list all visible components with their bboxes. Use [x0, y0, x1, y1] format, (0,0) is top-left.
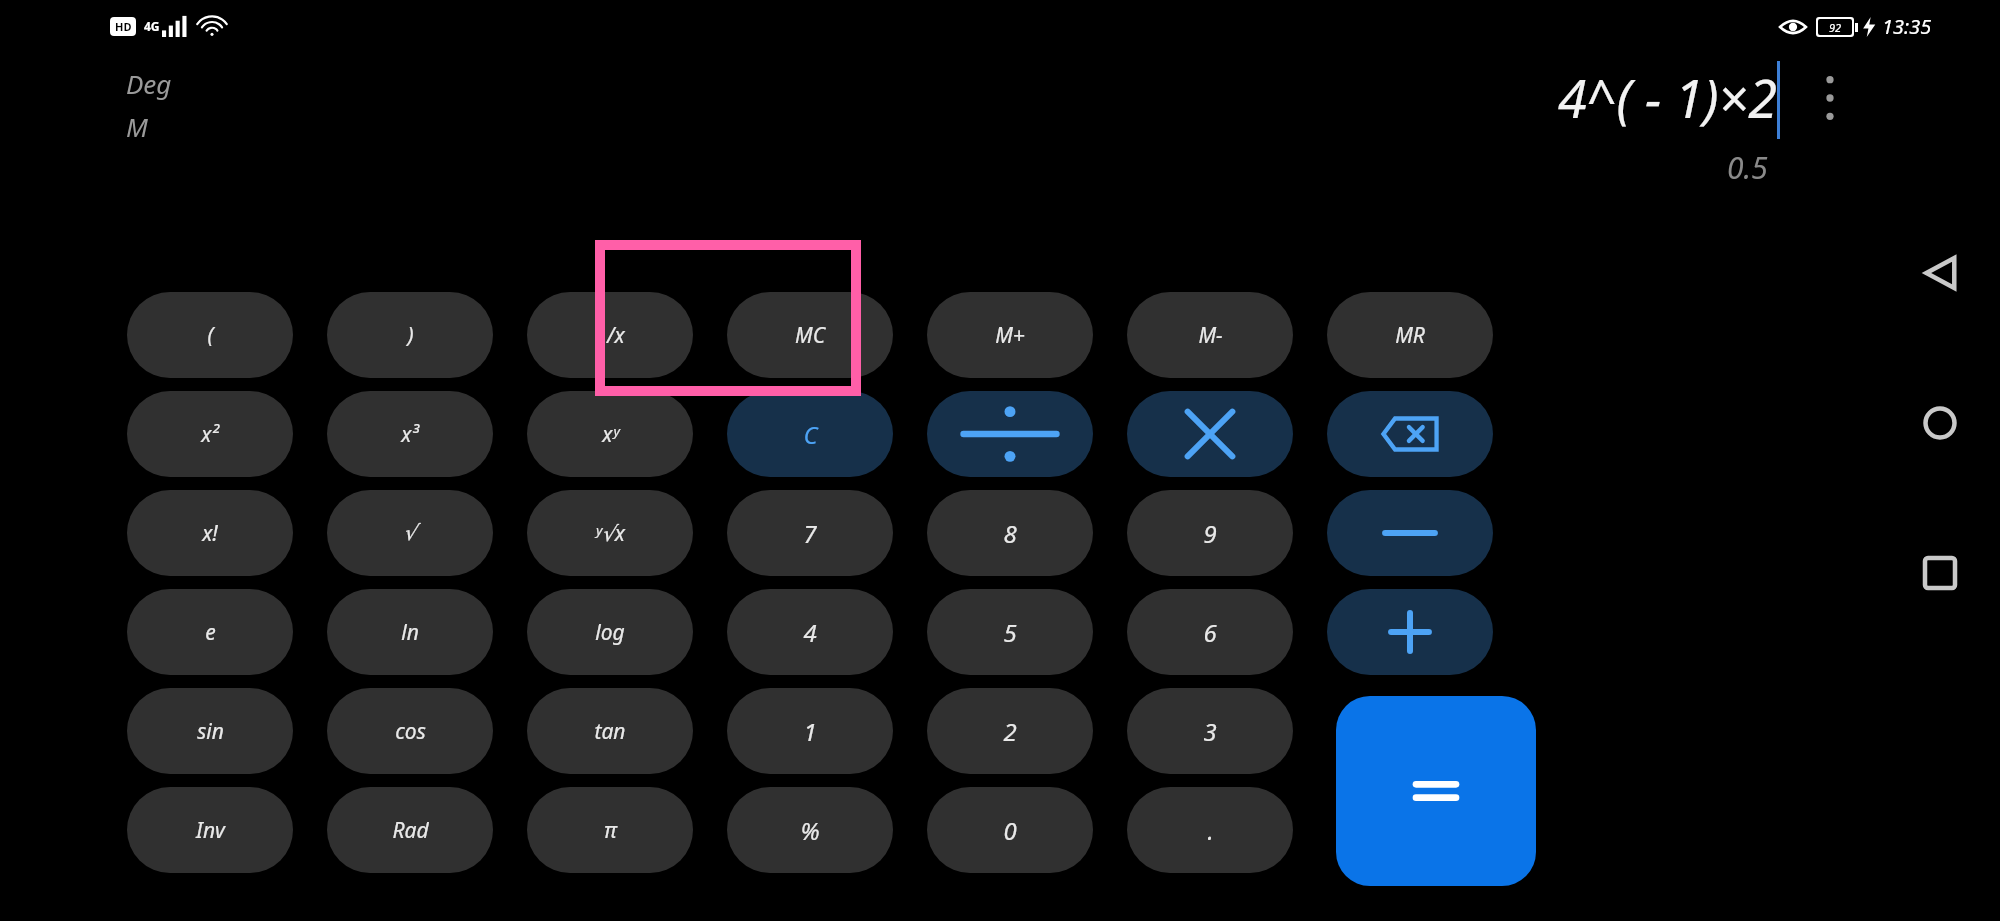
staticText: M+: [995, 321, 1025, 350]
button[interactable]: 9: [1127, 490, 1293, 576]
staticText: 8: [1003, 517, 1017, 550]
staticText: e: [205, 618, 216, 647]
button[interactable]: Inv: [127, 787, 293, 873]
button[interactable]: x!: [127, 490, 293, 576]
button[interactable]: Equals: [1336, 696, 1536, 886]
button[interactable]: Minus: [1327, 490, 1493, 576]
button[interactable]: M-: [1127, 292, 1293, 378]
staticText: π: [604, 816, 617, 845]
button[interactable]: Divide: [927, 391, 1093, 477]
button[interactable]: M+: [927, 292, 1093, 378]
staticText: x³: [401, 420, 419, 449]
button[interactable]: C: [727, 391, 893, 477]
staticText: 4G: [144, 18, 160, 34]
staticText: Rad: [392, 816, 429, 845]
staticText: sin: [197, 717, 224, 746]
staticText: (: [207, 321, 214, 350]
button[interactable]: 2: [927, 688, 1093, 774]
staticText: √: [403, 521, 417, 545]
button[interactable]: Multiply: [1127, 391, 1293, 477]
staticText: 9: [1203, 517, 1217, 550]
staticText: 0: [1003, 814, 1017, 847]
button[interactable]: ): [327, 292, 493, 378]
staticText: 7: [803, 517, 817, 550]
button[interactable]: x²: [127, 391, 293, 477]
staticText: xʸ: [602, 420, 619, 449]
staticText: M-: [1198, 321, 1223, 350]
staticText: ln: [401, 618, 419, 647]
button[interactable]: 1: [727, 688, 893, 774]
staticText: Deg: [126, 66, 172, 101]
staticText: x!: [202, 519, 218, 548]
staticText: 3: [1203, 715, 1217, 748]
staticText: 1/x: [595, 321, 625, 350]
staticText: Inv: [196, 816, 225, 845]
button[interactable]: .: [1127, 787, 1293, 873]
button[interactable]: 5: [927, 589, 1093, 675]
button[interactable]: Home: [1895, 378, 1985, 468]
button[interactable]: xʸ: [527, 391, 693, 477]
staticText: 4: [803, 616, 817, 649]
button[interactable]: Back: [1895, 228, 1985, 318]
staticText: 2: [1003, 715, 1017, 748]
staticText: 6: [1203, 616, 1217, 649]
button[interactable]: Plus: [1327, 589, 1493, 675]
button[interactable]: sin: [127, 688, 293, 774]
button[interactable]: MR: [1327, 292, 1493, 378]
staticText: tan: [594, 717, 626, 746]
button[interactable]: 7: [727, 490, 893, 576]
button[interactable]: 1/x: [527, 292, 693, 378]
staticText: .: [1207, 814, 1214, 847]
button[interactable]: ʸ√x: [527, 490, 693, 576]
staticText: ): [407, 321, 414, 350]
staticText: log: [595, 618, 625, 647]
staticText: ʸ√x: [595, 519, 625, 548]
staticText: 13:35: [1882, 13, 1932, 40]
button[interactable]: cos: [327, 688, 493, 774]
button[interactable]: x³: [327, 391, 493, 477]
button[interactable]: More options: [1808, 62, 1852, 134]
button[interactable]: 0: [927, 787, 1093, 873]
button[interactable]: Rad: [327, 787, 493, 873]
button[interactable]: π: [527, 787, 693, 873]
staticText: M: [126, 109, 148, 144]
button[interactable]: 8: [927, 490, 1093, 576]
button[interactable]: log: [527, 589, 693, 675]
staticText: 4^( − 1)×2: [1558, 62, 1777, 133]
button[interactable]: MC: [727, 292, 893, 378]
staticText: 5: [1003, 616, 1017, 649]
staticText: %: [800, 814, 820, 847]
button[interactable]: 4: [727, 589, 893, 675]
button[interactable]: Recents: [1895, 528, 1985, 618]
staticText: MC: [795, 321, 825, 350]
staticText: MR: [1395, 321, 1425, 350]
button[interactable]: %: [727, 787, 893, 873]
staticText: 0.5: [1727, 147, 1768, 188]
staticText: x²: [201, 420, 219, 449]
staticText: C: [803, 418, 818, 451]
button[interactable]: tan: [527, 688, 693, 774]
button[interactable]: e: [127, 589, 293, 675]
staticText: 1: [803, 715, 817, 748]
button[interactable]: √: [327, 490, 493, 576]
button[interactable]: ln: [327, 589, 493, 675]
staticText: 92: [1829, 20, 1842, 35]
button[interactable]: (: [127, 292, 293, 378]
button[interactable]: 3: [1127, 688, 1293, 774]
button[interactable]: Backspace: [1327, 391, 1493, 477]
button[interactable]: 6: [1127, 589, 1293, 675]
staticText: HD: [115, 19, 132, 34]
staticText: cos: [395, 717, 426, 746]
